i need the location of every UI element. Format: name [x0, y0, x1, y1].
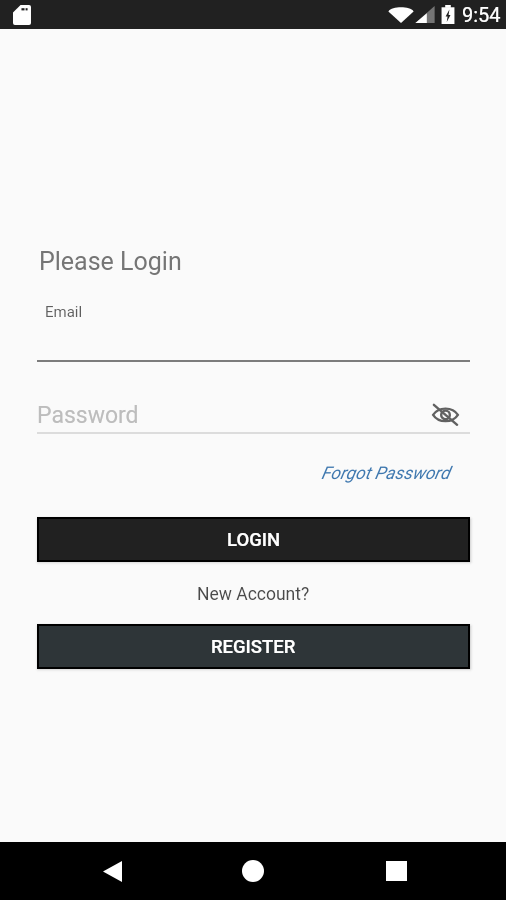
staticText: Please Login	[39, 247, 182, 276]
staticText: LOGIN	[227, 529, 281, 551]
button[interactable]: Recent apps	[356, 842, 436, 900]
button[interactable]: REGISTER	[39, 626, 468, 667]
button[interactable]: Forgot Password	[321, 463, 450, 484]
staticText: Email	[45, 303, 83, 321]
staticText: Password	[37, 402, 139, 429]
button[interactable]: LOGIN	[39, 519, 468, 560]
staticText: 9:54	[462, 3, 501, 26]
button[interactable]: Show password	[427, 396, 463, 432]
staticText: New Account?	[197, 584, 310, 605]
button[interactable]: Home	[213, 842, 293, 900]
staticText: REGISTER	[211, 636, 296, 658]
button[interactable]: Back	[72, 842, 152, 900]
